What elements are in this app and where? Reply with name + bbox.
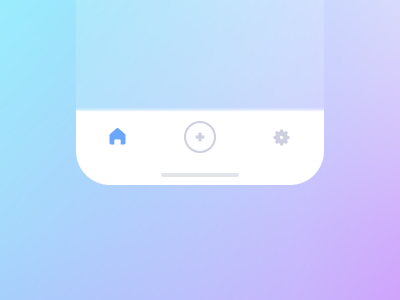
button[interactable]: Add xyxy=(172,115,228,159)
button[interactable]: Settings xyxy=(253,115,309,159)
button[interactable]: Home xyxy=(89,114,145,158)
